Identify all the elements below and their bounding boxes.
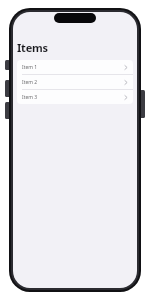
staticText: Item 2 [22,79,38,86]
staticText: Items [17,40,48,55]
other: Open [124,64,128,71]
other: Open [124,94,128,101]
other: Open [124,79,128,86]
button[interactable]: Item 2 [17,75,133,90]
staticText: Item 1 [22,64,38,71]
button[interactable]: Item 1 [17,60,133,75]
button[interactable]: Item 3 [17,90,133,104]
staticText: Item 3 [22,94,38,101]
